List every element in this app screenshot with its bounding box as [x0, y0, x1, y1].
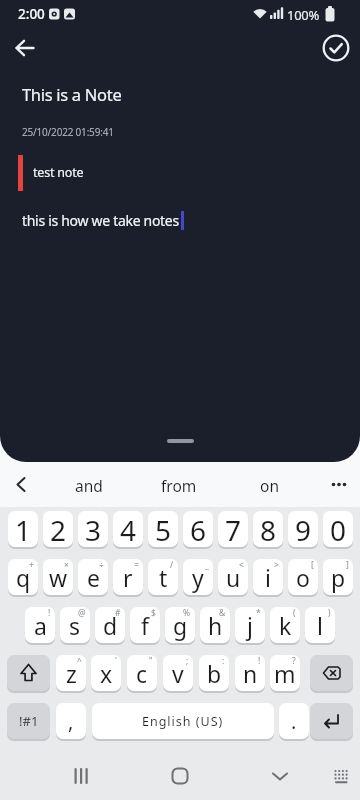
button[interactable]	[324, 468, 354, 501]
staticText: w	[49, 562, 68, 593]
staticText: q	[16, 562, 31, 593]
staticText: ×	[64, 559, 69, 571]
staticText: 7	[225, 511, 242, 547]
button[interactable]	[310, 655, 353, 691]
button[interactable]: v	[163, 655, 193, 691]
button[interactable]: 3	[78, 511, 108, 547]
staticText: >	[274, 559, 279, 571]
staticText: 3	[85, 511, 102, 547]
button[interactable]: !#1	[7, 703, 50, 739]
button[interactable]: from	[139, 468, 219, 502]
button[interactable]	[326, 760, 356, 792]
staticText: &	[219, 607, 226, 619]
staticText: from	[161, 475, 197, 496]
staticText: 8	[260, 511, 277, 547]
staticText: @	[78, 607, 86, 619]
button[interactable]: w	[43, 559, 73, 595]
staticText: #	[115, 607, 121, 619]
staticText: English (US)	[142, 713, 224, 730]
button[interactable]: g	[165, 607, 195, 643]
button[interactable]: k	[270, 607, 300, 643]
button[interactable]: e	[78, 559, 108, 595]
button[interactable]: 9	[288, 511, 318, 547]
button[interactable]: p	[323, 559, 353, 595]
button[interactable]: d	[95, 607, 125, 643]
staticText: !	[258, 655, 261, 667]
staticText: and	[75, 475, 103, 496]
staticText: ]	[346, 559, 349, 571]
button[interactable]: ,	[56, 703, 86, 739]
button[interactable]: q	[8, 559, 38, 595]
button[interactable]: r	[113, 559, 143, 595]
button[interactable]: l	[305, 607, 335, 643]
staticText: i	[265, 562, 271, 593]
staticText: !#1	[19, 712, 39, 730]
button[interactable]: 5	[148, 511, 178, 547]
staticText: 1	[15, 511, 32, 547]
button[interactable]: f	[130, 607, 160, 643]
staticText: y	[192, 562, 204, 593]
staticText: 6	[190, 511, 207, 547]
button[interactable]: n	[235, 655, 265, 691]
button[interactable]: 4	[113, 511, 143, 547]
button[interactable]	[62, 758, 98, 794]
staticText: l	[317, 610, 323, 641]
staticText: m	[274, 658, 296, 689]
button[interactable]: c	[127, 655, 157, 691]
button[interactable]	[162, 758, 198, 794]
staticText: g	[173, 610, 188, 641]
button[interactable]: z	[56, 655, 86, 691]
button[interactable]	[262, 758, 298, 794]
staticText: x	[100, 658, 113, 689]
button[interactable]: .	[279, 703, 309, 739]
button[interactable]: s	[60, 607, 90, 643]
staticText: u	[226, 562, 241, 593]
staticText: !	[48, 607, 51, 619]
staticText: p	[331, 562, 346, 593]
staticText: b	[207, 658, 222, 689]
staticText: +	[29, 559, 34, 571]
button[interactable]: o	[288, 559, 318, 595]
staticText: ÷	[99, 559, 104, 571]
staticText: %	[183, 607, 191, 619]
staticText: This is a Note	[22, 83, 122, 105]
button[interactable]: 7	[218, 511, 248, 547]
button[interactable]: 1	[8, 511, 38, 547]
button[interactable]: and	[49, 468, 129, 502]
staticText: h	[208, 610, 223, 641]
button[interactable]: u	[218, 559, 248, 595]
button[interactable]: 0	[323, 511, 353, 547]
button[interactable]: j	[235, 607, 265, 643]
staticText: n	[243, 658, 258, 689]
staticText: this is how we take notes	[22, 211, 179, 230]
button[interactable]	[319, 31, 353, 65]
button[interactable]: b	[199, 655, 229, 691]
staticText: 100%	[287, 6, 319, 24]
staticText: t	[159, 562, 168, 593]
button[interactable]: a	[25, 607, 55, 643]
button[interactable]	[8, 31, 42, 65]
button[interactable]	[310, 703, 353, 739]
button[interactable]: 6	[183, 511, 213, 547]
staticText: on	[260, 475, 279, 496]
staticText: f	[141, 610, 149, 641]
button[interactable]: y	[183, 559, 213, 595]
button[interactable]: m	[270, 655, 300, 691]
staticText: 2:00	[18, 5, 45, 23]
button[interactable]: h	[200, 607, 230, 643]
button[interactable]	[6, 468, 36, 501]
button[interactable]: 8	[253, 511, 283, 547]
staticText: /	[170, 559, 174, 571]
staticText: s	[69, 610, 81, 641]
staticText: test note	[33, 164, 84, 181]
button[interactable]: English (US)	[92, 703, 274, 739]
staticText: ^	[77, 655, 82, 667]
button[interactable]	[7, 655, 50, 691]
button[interactable]: on	[229, 468, 309, 502]
button[interactable]: t	[148, 559, 178, 595]
button[interactable]: 2	[43, 511, 73, 547]
staticText: <	[239, 559, 244, 571]
button[interactable]: x	[91, 655, 121, 691]
button[interactable]: i	[253, 559, 283, 595]
staticText: o	[296, 562, 310, 593]
